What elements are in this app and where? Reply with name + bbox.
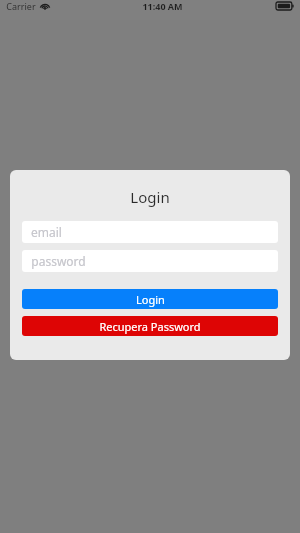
button[interactable]: Login: [22, 289, 278, 309]
staticText: Login: [136, 292, 165, 307]
staticText: 11:40 AM: [142, 0, 183, 12]
button[interactable]: Recupera Password: [22, 316, 278, 336]
button[interactable]: password: [22, 250, 278, 272]
button[interactable]: email: [22, 221, 278, 243]
staticText: Login: [130, 187, 170, 207]
staticText: Carrier: [6, 0, 36, 12]
staticText: email: [31, 224, 62, 240]
staticText: Recupera Password: [99, 319, 201, 334]
staticText: password: [31, 253, 86, 269]
